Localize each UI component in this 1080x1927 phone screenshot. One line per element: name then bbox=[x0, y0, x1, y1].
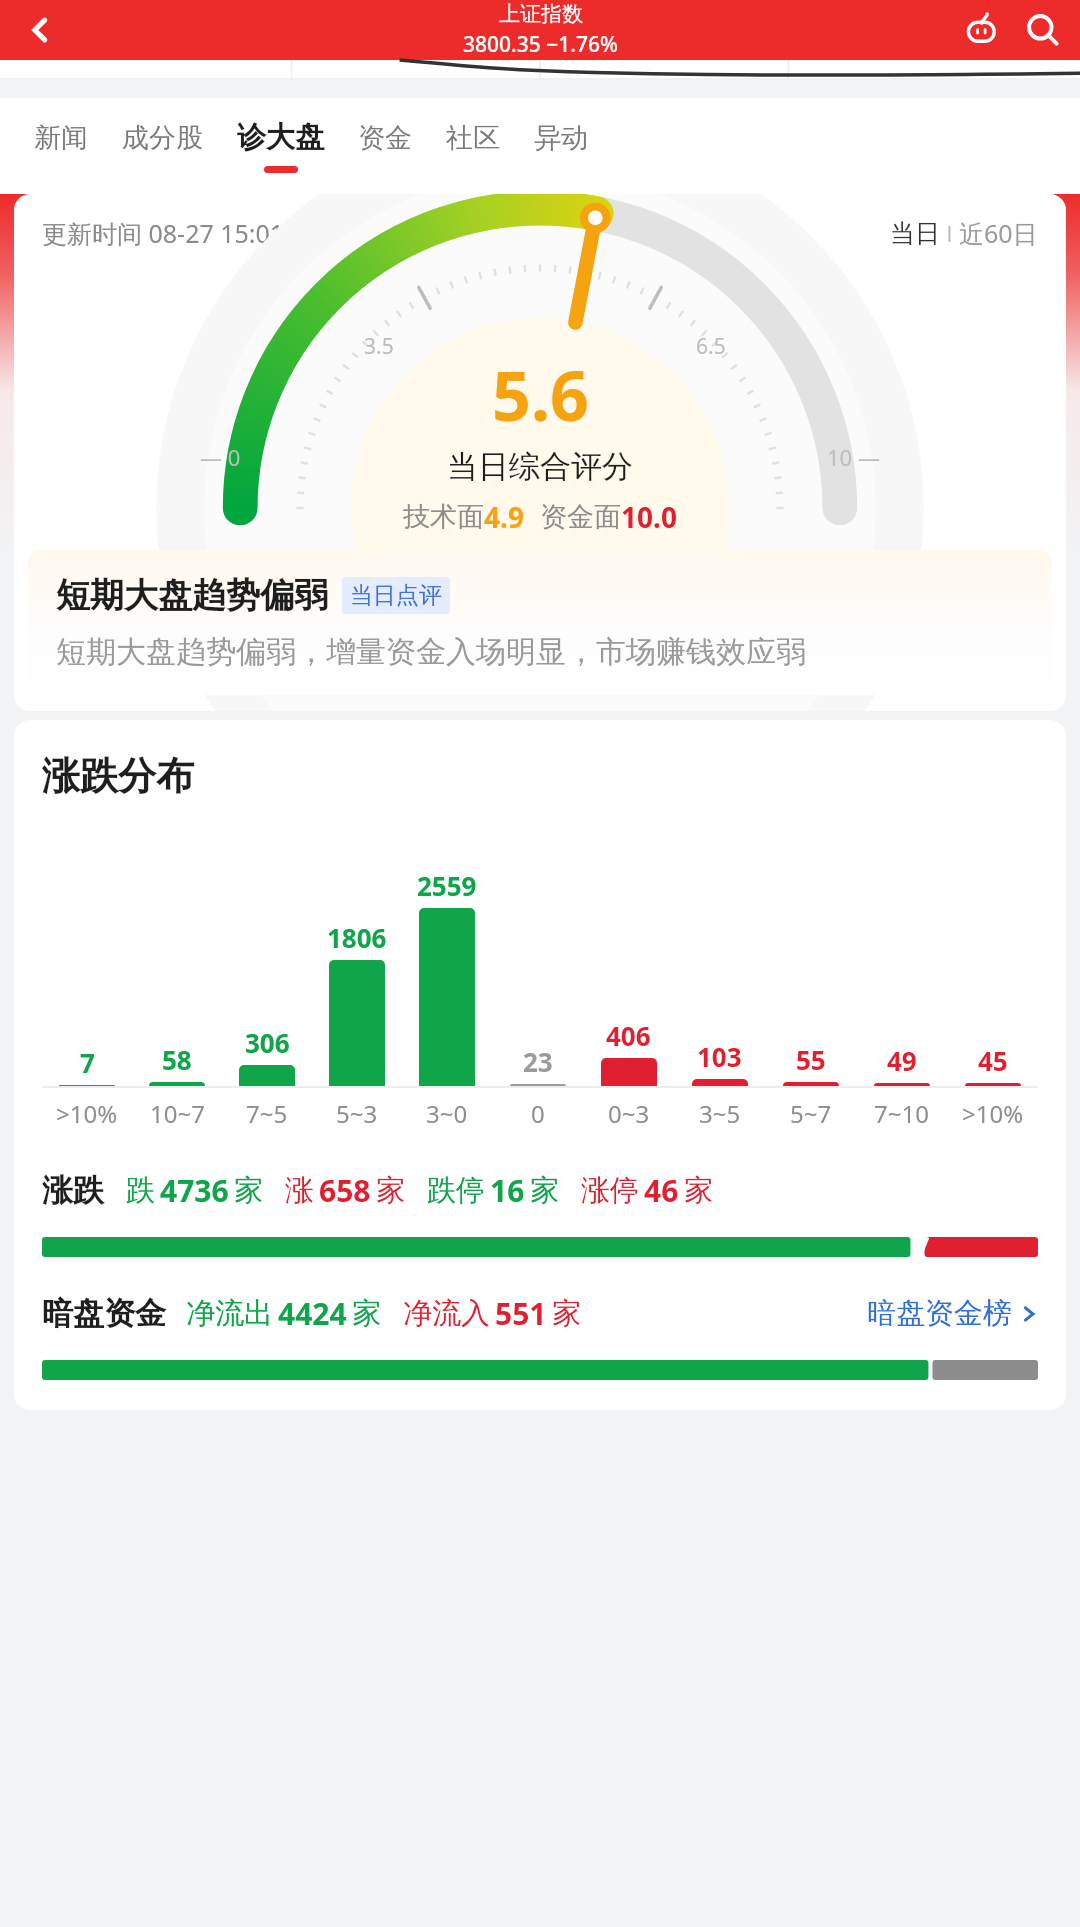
staticText: 技术面 bbox=[403, 500, 484, 534]
button[interactable]: Back bbox=[12, 2, 68, 58]
staticText: 10.0 bbox=[621, 498, 677, 536]
staticText: 暗盘资金榜 bbox=[867, 1295, 1012, 1332]
button[interactable]: 成分股 bbox=[122, 98, 203, 194]
staticText: 5~3 bbox=[336, 1097, 378, 1130]
staticText: 新闻 bbox=[34, 121, 88, 155]
staticText: 家 bbox=[352, 1295, 381, 1332]
staticText: 净流出 bbox=[186, 1295, 273, 1332]
staticText: 涨跌分布 bbox=[42, 752, 194, 800]
staticText: 当日综合评分 bbox=[447, 447, 633, 486]
staticText: 1806 bbox=[327, 920, 387, 955]
staticText: 23 bbox=[523, 1044, 553, 1079]
staticText: 0~3 bbox=[608, 1097, 650, 1130]
staticText: 短期大盘趋势偏弱 bbox=[56, 574, 328, 617]
staticText: 3.5 bbox=[364, 332, 394, 361]
staticText: 净流入 bbox=[403, 1295, 490, 1332]
staticText: 当日点评 bbox=[350, 581, 442, 610]
staticText: 7 bbox=[80, 1045, 95, 1080]
staticText: 资金 bbox=[358, 121, 412, 155]
staticText: 0 bbox=[531, 1097, 545, 1130]
staticText: 551 bbox=[495, 1293, 547, 1334]
button[interactable]: 新闻 bbox=[34, 98, 88, 194]
staticText: 4424 bbox=[278, 1293, 347, 1334]
staticText: 社区 bbox=[446, 121, 500, 155]
staticText: 16 bbox=[490, 1170, 525, 1211]
staticText: 5.6 bbox=[492, 348, 589, 441]
staticText: >10% bbox=[962, 1097, 1024, 1130]
staticText: 5~7 bbox=[790, 1097, 832, 1130]
button[interactable]: 短期大盘趋势偏弱 bbox=[28, 550, 1052, 695]
button[interactable]: AI assistant bbox=[950, 0, 1012, 60]
button[interactable]: 暗盘资金榜 bbox=[867, 1295, 1038, 1332]
staticText: 58 bbox=[162, 1042, 192, 1077]
button[interactable]: 社区 bbox=[446, 98, 500, 194]
staticText: 7~10 bbox=[874, 1097, 929, 1130]
staticText: 3~5 bbox=[699, 1097, 741, 1130]
staticText: 当日 bbox=[890, 218, 940, 249]
staticText: 家 bbox=[376, 1172, 405, 1209]
staticText: 103 bbox=[697, 1039, 742, 1074]
staticText: 家 bbox=[530, 1172, 559, 1209]
button[interactable]: 资金 bbox=[358, 98, 412, 194]
staticText: 46 bbox=[644, 1170, 679, 1211]
staticText: 近60日 bbox=[959, 216, 1038, 250]
button[interactable]: 近60日 bbox=[959, 216, 1038, 250]
staticText: 涨停 bbox=[581, 1172, 639, 1209]
staticText: 6.5 bbox=[696, 332, 726, 361]
staticText: 涨 bbox=[285, 1172, 314, 1209]
staticText: 家 bbox=[684, 1172, 713, 1209]
staticText: 短期大盘趋势偏弱，增量资金入场明显，市场赚钱效应弱 bbox=[56, 633, 806, 671]
staticText: 10~7 bbox=[150, 1097, 205, 1130]
staticText: 暗盘资金 bbox=[42, 1294, 166, 1333]
staticText: 家 bbox=[234, 1172, 263, 1209]
staticText: 55 bbox=[796, 1042, 826, 1077]
staticText: 45 bbox=[978, 1043, 1008, 1078]
button[interactable]: 异动 bbox=[534, 98, 588, 194]
staticText: 跌 bbox=[126, 1172, 155, 1209]
staticText: 4736 bbox=[160, 1170, 229, 1211]
staticText: 3800.35 −1.76% bbox=[463, 30, 618, 59]
staticText: 涨跌 bbox=[42, 1171, 104, 1210]
button[interactable]: 诊大盘 bbox=[237, 98, 324, 194]
staticText: 7~5 bbox=[246, 1097, 288, 1130]
staticText: 诊大盘 bbox=[237, 119, 324, 156]
staticText: 49 bbox=[887, 1043, 917, 1078]
staticText: 10 — bbox=[827, 442, 880, 472]
staticText: 2559 bbox=[417, 868, 477, 903]
staticText: 306 bbox=[245, 1025, 290, 1060]
staticText: 658 bbox=[319, 1170, 371, 1211]
staticText: 406 bbox=[606, 1018, 651, 1053]
staticText: ǀ bbox=[940, 218, 959, 248]
button[interactable]: Search bbox=[1012, 0, 1074, 60]
staticText: — 0 bbox=[200, 442, 241, 472]
staticText: 资金面 bbox=[540, 500, 621, 534]
staticText: 跌停 bbox=[427, 1172, 485, 1209]
staticText: 3~0 bbox=[426, 1097, 468, 1130]
staticText: 家 bbox=[552, 1295, 581, 1332]
staticText: 成分股 bbox=[122, 121, 203, 155]
staticText: 上证指数 bbox=[499, 1, 583, 27]
staticText: 异动 bbox=[534, 121, 588, 155]
staticText: >10% bbox=[56, 1097, 118, 1130]
button[interactable]: 当日 bbox=[890, 218, 940, 249]
staticText: 更新时间 08-27 15:01 bbox=[42, 216, 285, 250]
staticText: 4.9 bbox=[484, 498, 524, 536]
